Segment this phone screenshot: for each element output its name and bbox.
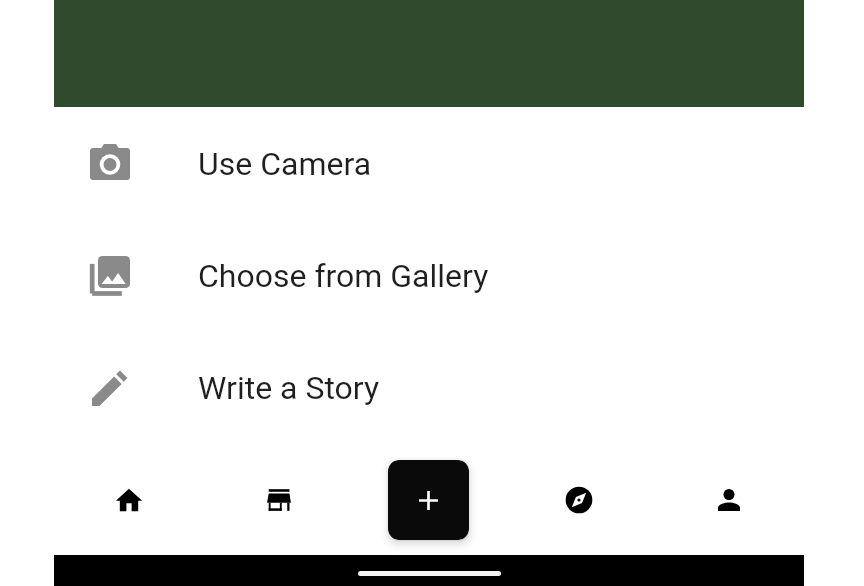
button[interactable]: Profile <box>654 444 804 555</box>
button[interactable]: Write a Story <box>54 332 804 444</box>
button[interactable]: Explore <box>504 444 654 555</box>
staticText: Use Camera <box>198 145 372 183</box>
button[interactable]: Choose from Gallery <box>54 220 804 332</box>
staticText: Write a Story <box>198 369 380 407</box>
button[interactable]: Use Camera <box>54 108 804 220</box>
button[interactable]: Home <box>54 444 204 555</box>
button[interactable]: Add <box>388 460 469 540</box>
staticText: Choose from Gallery <box>198 257 489 295</box>
button[interactable]: Store <box>204 444 354 555</box>
